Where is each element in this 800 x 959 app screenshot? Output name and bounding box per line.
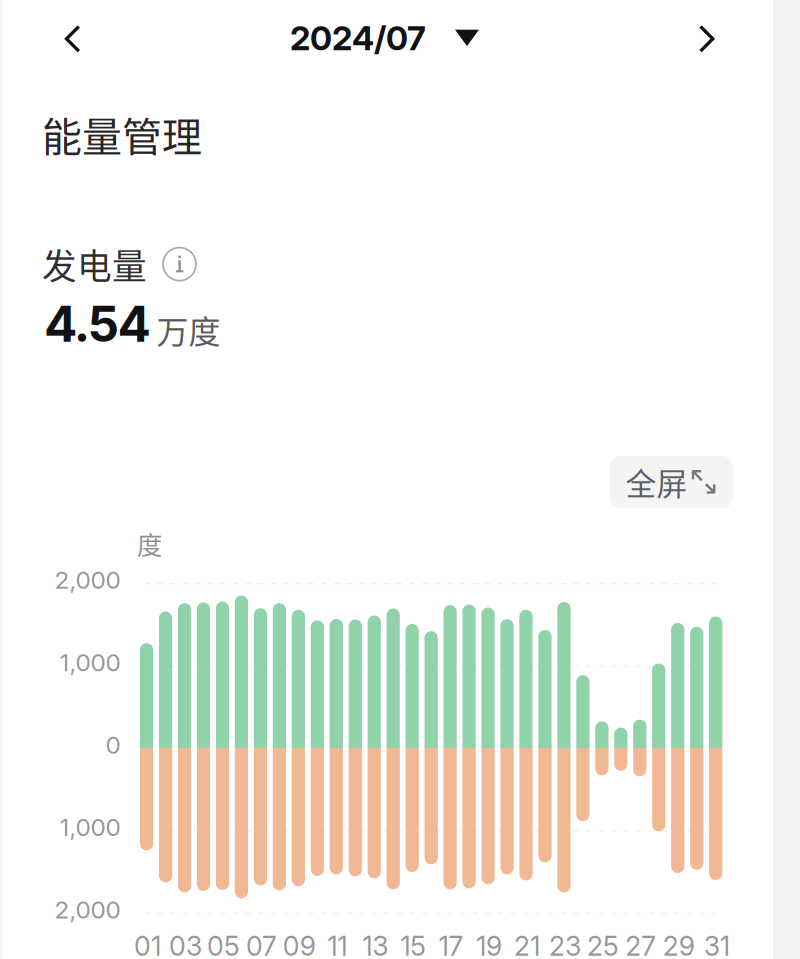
staticText: 11 (327, 930, 347, 959)
staticText: 05 (207, 930, 240, 959)
staticText: 2,000 (54, 565, 120, 595)
staticText: 2,000 (54, 895, 120, 924)
button[interactable]: Previous month (45, 11, 101, 67)
staticText: 全屏 (625, 460, 687, 504)
staticText: 2024/07 (290, 18, 426, 58)
staticText: 15 (400, 930, 426, 959)
staticText: 能量管理 (42, 105, 202, 163)
staticText: 19 (476, 930, 502, 959)
staticText: 07 (246, 930, 277, 959)
staticText: 13 (362, 930, 388, 959)
staticText: 17 (439, 930, 464, 959)
staticText: 21 (514, 930, 540, 959)
staticText: 27 (625, 930, 656, 959)
staticText: 29 (663, 930, 695, 959)
staticText: 23 (549, 930, 581, 959)
staticText: 01 (134, 930, 161, 959)
staticText: 发电量 (42, 239, 147, 289)
staticText: 31 (704, 930, 730, 959)
button[interactable]: About 发电量 (163, 248, 196, 281)
staticText: 4.54 (44, 294, 150, 354)
staticText: 1,000 (59, 648, 120, 677)
button[interactable]: 2024/07 (290, 10, 479, 66)
staticText: 度 (137, 525, 162, 562)
staticText: 万度 (156, 306, 220, 353)
staticText: 25 (587, 930, 619, 959)
staticText: 09 (283, 930, 316, 959)
button[interactable]: Next month (679, 11, 735, 67)
staticText: 03 (169, 930, 202, 959)
staticText: 1,000 (59, 812, 120, 842)
button[interactable]: 全屏 (610, 456, 733, 508)
staticText: 0 (105, 730, 120, 759)
